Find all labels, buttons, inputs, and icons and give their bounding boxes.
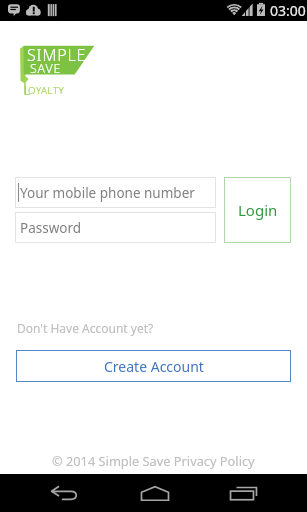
button[interactable]: Your mobile phone number <box>15 177 216 208</box>
button[interactable]: Home <box>126 474 183 512</box>
button[interactable]: Create Account <box>16 350 291 382</box>
staticText: OYALTY <box>28 84 65 97</box>
staticText: L <box>24 82 31 99</box>
staticText: Your mobile phone number <box>20 184 195 202</box>
staticText: Login <box>238 200 278 220</box>
staticText: Don't Have Account yet? <box>17 320 154 336</box>
staticText: Create Account <box>104 357 204 376</box>
staticText: © 2014 Simple Save Privacy Policy <box>52 452 255 469</box>
button[interactable]: Recent apps <box>215 474 272 512</box>
button[interactable]: Back <box>36 474 93 512</box>
button[interactable]: Login <box>224 177 291 243</box>
staticText: SAVE <box>30 60 62 77</box>
staticText: 03:00 <box>270 1 306 20</box>
button[interactable]: Password <box>15 212 216 243</box>
staticText: Password <box>20 219 82 237</box>
staticText: SIMPLE <box>27 44 87 66</box>
